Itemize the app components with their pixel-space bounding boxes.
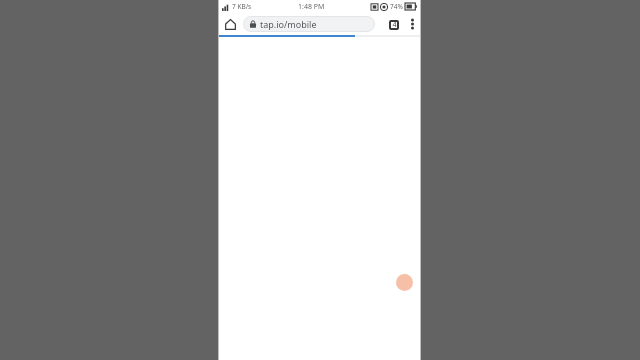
staticText: tap.io/mobile — [260, 18, 317, 30]
staticText: 1:48 PM — [298, 2, 325, 12]
button[interactable]: More options — [403, 13, 421, 35]
staticText: 7 KB/s — [232, 2, 252, 11]
staticText: 4 — [392, 20, 397, 30]
staticText: 74% — [390, 2, 403, 11]
button[interactable]: Home — [218, 13, 243, 35]
button[interactable]: Tabs, 4 open — [384, 15, 403, 34]
button[interactable]: tap.io/mobile — [243, 16, 375, 32]
button[interactable]: Tap indicator — [396, 274, 413, 291]
